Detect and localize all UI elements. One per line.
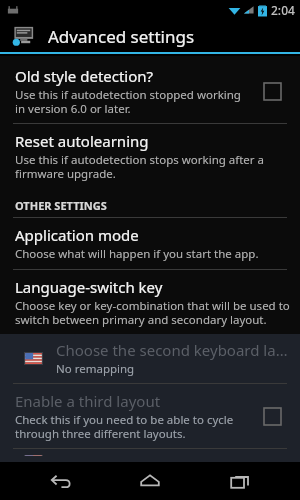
staticText: Application mode — [15, 225, 139, 245]
button[interactable]: Recent apps — [211, 462, 269, 500]
staticText: Use this if autodetection stops working … — [15, 152, 290, 181]
button[interactable]: Checkbox — [254, 73, 290, 109]
staticText: Reset autolearning — [15, 131, 149, 151]
button[interactable]: Language-switch key — [0, 270, 300, 334]
staticText: Enable a third layout — [15, 391, 161, 411]
staticText: 2:04 — [271, 2, 295, 18]
button[interactable]: US flag — [0, 449, 300, 462]
button[interactable]: US flag — [0, 334, 300, 383]
staticText: Check this if you need to be able to cyc… — [15, 412, 246, 441]
other: US flag — [24, 455, 43, 456]
other: US flag — [24, 352, 43, 365]
button[interactable]: Enable a third layout — [0, 384, 300, 448]
other: App icon — [12, 24, 36, 48]
staticText: Choose key or key-combination that will … — [15, 298, 290, 327]
staticText: Choose the second keyboard lay.. — [56, 340, 290, 360]
staticText: OTHER SETTINGS — [15, 198, 107, 213]
button[interactable]: Old style detection? — [0, 59, 300, 123]
button[interactable]: Reset autolearning — [0, 124, 300, 188]
button[interactable]: Back — [32, 462, 90, 500]
button[interactable]: App icon — [0, 20, 300, 52]
staticText: Choose what will happen if you start the… — [15, 246, 259, 262]
staticText: Language-switch key — [15, 277, 163, 297]
staticText: No remapping — [56, 361, 135, 377]
staticText: Old style detection? — [15, 66, 154, 86]
button[interactable]: Application mode — [0, 218, 300, 269]
button[interactable]: Home — [121, 462, 179, 500]
button[interactable]: Checkbox — [254, 398, 290, 434]
staticText: Advanced settings — [48, 25, 195, 48]
staticText: Use this if autodetection stopped workin… — [15, 87, 246, 116]
